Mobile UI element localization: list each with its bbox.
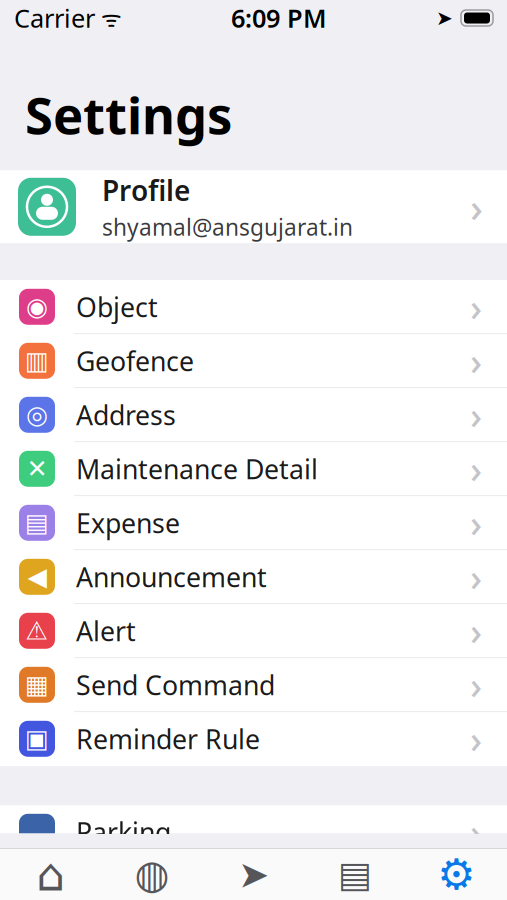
staticText: › bbox=[470, 498, 482, 548]
button[interactable]: ◎ bbox=[0, 388, 507, 442]
staticText: Maintenance Detail bbox=[76, 451, 318, 486]
staticText: › bbox=[470, 660, 482, 710]
staticText: Reminder Rule bbox=[76, 721, 260, 756]
staticText: › bbox=[470, 606, 482, 656]
staticText: ᯤ bbox=[95, 3, 122, 33]
button[interactable]: ◉ bbox=[0, 280, 507, 334]
staticText: ◉ bbox=[26, 292, 48, 321]
staticText: Announcement bbox=[76, 559, 267, 594]
staticText: ◀ bbox=[27, 562, 46, 591]
staticText: Expense bbox=[76, 505, 180, 540]
staticText: › bbox=[470, 552, 482, 602]
staticText: ▥ bbox=[25, 346, 49, 375]
staticText: ➤ bbox=[238, 853, 269, 896]
staticText: Send Command bbox=[76, 667, 275, 702]
staticText: ▦ bbox=[25, 670, 49, 699]
button[interactable]: ◀ bbox=[0, 550, 507, 604]
staticText: ⚠ bbox=[25, 616, 48, 645]
staticText: › bbox=[470, 714, 482, 764]
staticText: Object bbox=[76, 289, 158, 324]
staticText: ▤ bbox=[338, 854, 372, 895]
button[interactable]: Navigate bbox=[203, 849, 304, 900]
staticText: ▤ bbox=[25, 508, 49, 537]
staticText: Carrier bbox=[14, 1, 95, 35]
button[interactable]: Places bbox=[101, 849, 203, 900]
staticText: ✕ bbox=[26, 454, 47, 483]
staticText: ➤ bbox=[436, 7, 453, 29]
staticText: ⚙ bbox=[437, 850, 475, 899]
staticText: ▣ bbox=[25, 724, 49, 753]
button[interactable]: Home bbox=[0, 849, 101, 900]
staticText: › bbox=[470, 390, 482, 440]
button[interactable]: Reports bbox=[304, 849, 406, 900]
button[interactable]: Profile bbox=[0, 170, 507, 243]
button[interactable]: ▣ bbox=[0, 712, 507, 766]
staticText: ◎ bbox=[26, 400, 48, 429]
staticText: › bbox=[470, 180, 483, 233]
staticText: › bbox=[470, 444, 482, 494]
staticText: 6:09 PM bbox=[231, 1, 327, 35]
button[interactable]: ▥ bbox=[0, 334, 507, 388]
staticText: Address bbox=[76, 397, 176, 432]
button[interactable]: ✕ bbox=[0, 442, 507, 496]
button[interactable]: Parking bbox=[0, 805, 507, 858]
staticText: Alert bbox=[76, 613, 136, 648]
staticText: Settings bbox=[25, 81, 232, 148]
button[interactable]: Settings bbox=[406, 849, 507, 900]
button[interactable]: ▤ bbox=[0, 496, 507, 550]
staticText: › bbox=[470, 336, 482, 386]
staticText: ◍ bbox=[135, 852, 170, 897]
staticText: Geofence bbox=[76, 343, 194, 378]
staticText: Profile bbox=[102, 172, 190, 209]
button[interactable]: ▦ bbox=[0, 658, 507, 712]
staticText: shyamal@ansgujarat.in bbox=[102, 212, 353, 242]
staticText: › bbox=[470, 807, 482, 857]
staticText: Parking bbox=[76, 814, 171, 849]
staticText: › bbox=[470, 282, 482, 332]
staticText: ⌂ bbox=[36, 849, 65, 900]
button[interactable]: ⚠ bbox=[0, 604, 507, 658]
